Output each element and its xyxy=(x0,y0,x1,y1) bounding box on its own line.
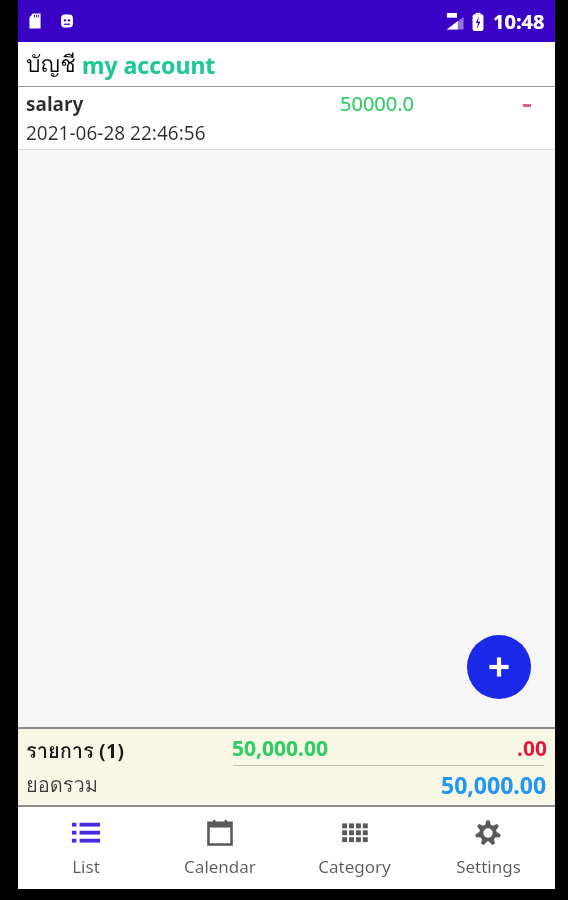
staticText: Category xyxy=(318,855,391,878)
staticText: 50,000.00 xyxy=(232,734,328,763)
staticText: ยอดรวม xyxy=(26,769,98,801)
button[interactable]: Add entry xyxy=(467,635,531,699)
button[interactable]: Category xyxy=(287,807,421,889)
staticText: รายการ (1) xyxy=(26,735,124,767)
staticText: 2021-06-28 22:46:56 xyxy=(26,120,206,146)
button[interactable]: salary xyxy=(18,87,555,150)
button[interactable]: List xyxy=(18,807,153,889)
staticText: Calendar xyxy=(184,855,256,878)
staticText: 50,000.00 xyxy=(441,769,547,800)
button[interactable]: Settings xyxy=(421,807,555,889)
staticText: 50000.0 xyxy=(340,90,414,117)
button[interactable]: รายการ (1) xyxy=(18,729,555,805)
staticText: salary xyxy=(26,91,84,117)
button[interactable]: บัญชี xyxy=(18,42,555,86)
staticText: บัญชี xyxy=(26,46,76,83)
staticText: List xyxy=(72,855,100,878)
staticText: Settings xyxy=(456,855,521,878)
staticText: .00 xyxy=(517,734,547,763)
staticText: 10:48 xyxy=(493,8,545,35)
button[interactable]: Calendar xyxy=(153,807,287,889)
staticText: my account xyxy=(82,49,216,80)
